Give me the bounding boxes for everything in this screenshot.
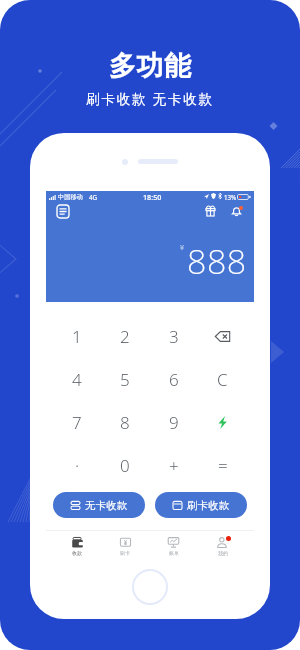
button[interactable]: 刷卡	[101, 531, 149, 561]
staticText: 收款	[72, 550, 82, 556]
staticText: 刷卡收款	[187, 499, 230, 512]
staticText: 888	[187, 238, 247, 284]
button[interactable]: 无卡收款	[53, 492, 145, 518]
button[interactable]: Gifts	[200, 201, 220, 221]
staticText: 刷卡	[120, 550, 130, 556]
button[interactable]: Menu	[53, 201, 73, 221]
staticText: 无卡收款	[85, 499, 128, 512]
staticText: +	[169, 454, 179, 477]
staticText: 2	[120, 325, 130, 348]
staticText: 9	[169, 411, 179, 434]
button[interactable]: Notifications	[226, 201, 246, 221]
staticText: ¥	[180, 243, 185, 253]
button[interactable]: 我的	[198, 531, 247, 561]
button[interactable]: C	[198, 358, 247, 401]
other: Quick pay	[218, 416, 227, 429]
button[interactable]: Delete	[198, 314, 247, 358]
button[interactable]: 账单	[149, 531, 198, 561]
staticText: 18:50	[143, 192, 162, 201]
other: Delete	[215, 331, 230, 342]
button[interactable]: Quick pay	[198, 401, 247, 444]
button[interactable]: 1	[53, 314, 101, 358]
staticText: C	[217, 368, 228, 391]
staticText: 4	[72, 368, 82, 391]
staticText: 13%	[224, 193, 237, 201]
button[interactable]: 9	[149, 401, 198, 444]
button[interactable]: 5	[101, 358, 149, 401]
staticText: 账单	[169, 550, 179, 556]
button[interactable]: 收款	[53, 531, 101, 561]
button[interactable]: 3	[149, 314, 198, 358]
button[interactable]: ·	[53, 444, 101, 487]
staticText: 3	[169, 325, 179, 348]
staticText: 7	[72, 411, 82, 434]
button[interactable]: 4	[53, 358, 101, 401]
staticText: ·	[75, 454, 80, 477]
button[interactable]: 刷卡收款	[155, 492, 247, 518]
staticText: 4G	[89, 193, 98, 201]
staticText: 6	[169, 368, 179, 391]
staticText: 多功能	[109, 49, 192, 83]
button[interactable]: 6	[149, 358, 198, 401]
staticText: 中国移动	[58, 193, 83, 201]
staticText: 我的	[218, 550, 228, 556]
staticText: =	[218, 454, 228, 477]
staticText: 刷卡收款 无卡收款	[86, 90, 214, 108]
staticText: 1	[72, 325, 82, 348]
button[interactable]: =	[198, 444, 247, 487]
button[interactable]: 2	[101, 314, 149, 358]
button[interactable]: 7	[53, 401, 101, 444]
staticText: 8	[120, 411, 130, 434]
staticText: 0	[120, 454, 130, 477]
button[interactable]: 0	[101, 444, 149, 487]
staticText: 5	[120, 368, 130, 391]
button[interactable]: 8	[101, 401, 149, 444]
button[interactable]: +	[149, 444, 198, 487]
